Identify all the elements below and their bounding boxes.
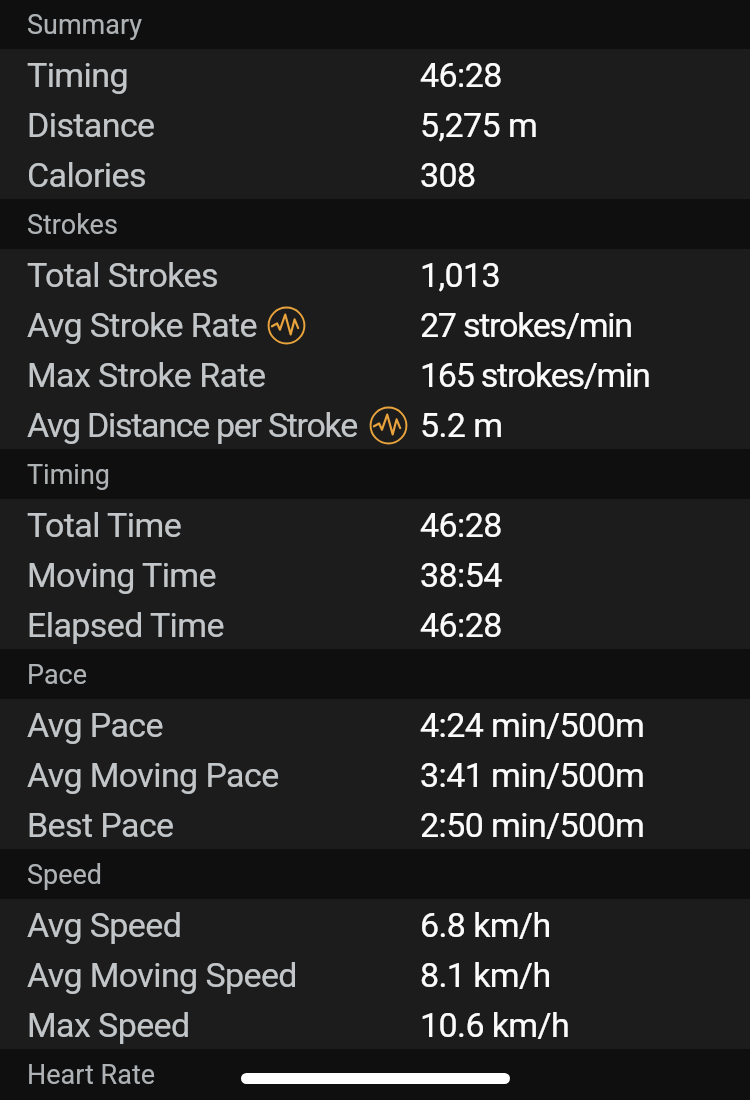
staticText: 38:54	[420, 555, 502, 595]
button[interactable]: Max Stroke Rate	[0, 349, 750, 399]
staticText: Avg Speed	[27, 905, 182, 945]
staticText: Avg Moving Speed	[27, 955, 297, 995]
button[interactable]: Pace	[0, 649, 750, 699]
staticText: Distance	[27, 105, 155, 145]
staticText: Total Strokes	[27, 255, 218, 295]
staticText: 5.2 m	[420, 405, 503, 445]
button[interactable]: Total Time	[0, 499, 750, 549]
button[interactable]: Avg Moving Pace	[0, 749, 750, 799]
staticText: 165 strokes/min	[420, 355, 650, 395]
staticText: 6.8 km/h	[420, 905, 551, 945]
button[interactable]: Max Speed	[0, 999, 750, 1049]
staticText: Max Stroke Rate	[27, 355, 266, 395]
button[interactable]: Avg Moving Speed	[0, 949, 750, 999]
staticText: Elapsed Time	[27, 605, 224, 645]
button[interactable]: Moving Time	[0, 549, 750, 599]
button[interactable]: Timing	[0, 449, 750, 499]
button[interactable]: Best Pace	[0, 799, 750, 849]
staticText: 3:41 min/500m	[420, 755, 645, 795]
staticText: 1,013	[420, 255, 501, 295]
staticText: 10.6 km/h	[420, 1005, 570, 1045]
button[interactable]: Distance	[0, 99, 750, 149]
staticText: 5,275 m	[420, 105, 538, 145]
button[interactable]: Strokes	[0, 199, 750, 249]
staticText: Total Time	[27, 505, 182, 545]
staticText: Heart Rate	[27, 1059, 156, 1091]
staticText: Calories	[27, 155, 146, 195]
staticText: Strokes	[27, 209, 118, 241]
staticText: Pace	[27, 659, 88, 691]
staticText: 4:24 min/500m	[420, 705, 645, 745]
staticText: Avg Distance per Stroke	[27, 405, 357, 445]
button[interactable]: Timing	[0, 49, 750, 99]
other: Measured by sensor	[267, 306, 306, 345]
staticText: Max Speed	[27, 1005, 190, 1045]
button[interactable]: Heart Rate	[0, 1049, 750, 1099]
button[interactable]: Calories	[0, 149, 750, 199]
staticText: Avg Stroke Rate	[27, 305, 257, 345]
staticText: Speed	[27, 859, 103, 891]
other: Measured by sensor	[369, 406, 408, 445]
button[interactable]: Avg Distance per Stroke	[0, 399, 750, 449]
staticText: Summary	[27, 9, 143, 41]
staticText: 46:28	[420, 605, 502, 645]
button[interactable]: Avg Pace	[0, 699, 750, 749]
staticText: 8.1 km/h	[420, 955, 551, 995]
button[interactable]: Summary	[0, 0, 750, 49]
button[interactable]: Total Strokes	[0, 249, 750, 299]
button[interactable]: Elapsed Time	[0, 599, 750, 649]
staticText: Avg Pace	[27, 705, 163, 745]
button[interactable]: Avg Stroke Rate	[0, 299, 750, 349]
staticText: Timing	[27, 459, 110, 491]
staticText: 46:28	[420, 505, 502, 545]
staticText: Moving Time	[27, 555, 216, 595]
button[interactable]: Speed	[0, 849, 750, 899]
staticText: Avg Moving Pace	[27, 755, 279, 795]
staticText: 2:50 min/500m	[420, 805, 645, 845]
button[interactable]: Avg Speed	[0, 899, 750, 949]
staticText: 46:28	[420, 55, 502, 95]
staticText: 27 strokes/min	[420, 305, 632, 345]
staticText: 308	[420, 155, 476, 195]
staticText: Best Pace	[27, 805, 174, 845]
staticText: Timing	[27, 55, 128, 95]
